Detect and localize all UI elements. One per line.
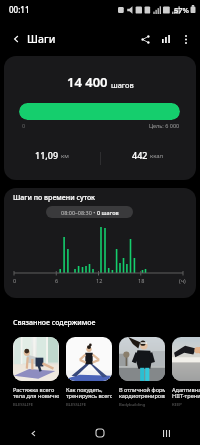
button[interactable]: Share <box>136 30 154 48</box>
staticText: 00:11 <box>9 4 30 15</box>
button[interactable]: Как похудеть, тренируясь всего ... <box>66 337 112 408</box>
button[interactable]: Растяжка всего тела для новичков <box>13 337 59 408</box>
button[interactable]: В отличной форме: кардиотренировк... <box>119 337 165 408</box>
staticText: 442 <box>132 149 148 161</box>
staticText: 08:00–08:30 • <box>61 209 97 216</box>
button[interactable]: Recent apps <box>133 421 200 445</box>
staticText: В отличной форме: кардиотренировк... <box>119 386 165 400</box>
staticText: шагов <box>111 80 134 90</box>
staticText: 6 <box>55 277 59 284</box>
button[interactable]: 14 400 <box>4 56 196 180</box>
staticText: BLESSLIFE <box>13 402 33 408</box>
button[interactable]: Шаги <box>27 30 56 48</box>
staticText: 12 <box>96 277 103 284</box>
staticText: 0 <box>13 277 17 284</box>
staticText: 14 400 <box>67 73 108 91</box>
staticText: 0 шагов <box>97 209 119 216</box>
button[interactable]: Back <box>0 421 66 445</box>
staticText: Шаги <box>27 32 56 46</box>
staticText: 11,09 <box>35 149 59 161</box>
staticText: Как похудеть, тренируясь всего ... <box>66 386 112 400</box>
button[interactable]: Statistics <box>157 30 175 48</box>
button[interactable]: Back <box>7 30 24 47</box>
button[interactable]: More options <box>177 30 195 48</box>
staticText: 57% <box>174 5 189 15</box>
staticText: Связанное содержимое <box>13 318 96 328</box>
staticText: 18 <box>138 277 145 284</box>
staticText: KEEP <box>172 402 182 408</box>
staticText: 0 <box>22 122 26 129</box>
staticText: BLESSLIFE <box>66 402 86 408</box>
staticText: ккал <box>150 152 164 160</box>
staticText: Bodybuilding <box>119 402 146 408</box>
button[interactable]: Адаптивная HIIT-тренировка <box>172 337 200 408</box>
staticText: Цель: 6 000 <box>149 122 180 129</box>
staticText: Растяжка всего тела для новичков <box>13 386 59 400</box>
button[interactable]: Home <box>66 421 133 445</box>
staticText: Шаги по времени суток <box>13 193 96 203</box>
staticText: км <box>61 152 69 160</box>
staticText: Адаптивная HIIT-тренировка <box>172 386 200 400</box>
button[interactable]: Шаги по времени суток <box>4 188 196 298</box>
staticText: (ч) <box>179 277 186 284</box>
